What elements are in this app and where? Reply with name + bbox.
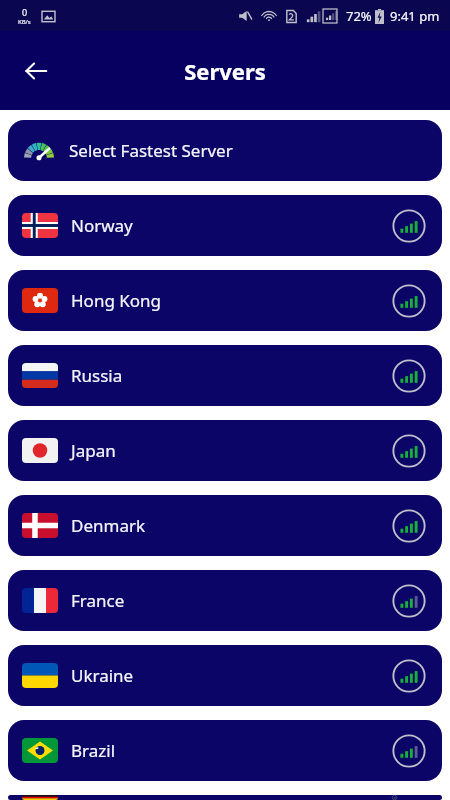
staticText: 0 [22,6,28,18]
button[interactable]: Hong Kong [8,270,442,331]
staticText: 72% [346,7,372,25]
staticText: 9:41 pm [390,7,440,25]
staticText: Servers [184,56,266,86]
staticText: Russia [71,364,123,387]
staticText: KB/s [18,18,31,26]
button[interactable]: Select Fastest Server [8,120,442,181]
button[interactable]: Brazil [8,720,442,781]
staticText: France [71,589,125,612]
staticText: Japan [71,439,116,462]
staticText: Select Fastest Server [69,139,233,162]
staticText: Denmark [71,514,146,537]
button[interactable]: Japan [8,420,442,481]
staticText: Brazil [71,739,116,762]
button[interactable]: Russia [8,345,442,406]
button[interactable]: Back [12,47,60,95]
button[interactable]: Germany [8,795,442,800]
button[interactable]: Norway [8,195,442,256]
button[interactable]: Denmark [8,495,442,556]
button[interactable]: Ukraine [8,645,442,706]
staticText: Ukraine [71,664,134,687]
staticText: Hong Kong [71,289,162,312]
staticText: Norway [71,214,133,237]
button[interactable]: France [8,570,442,631]
